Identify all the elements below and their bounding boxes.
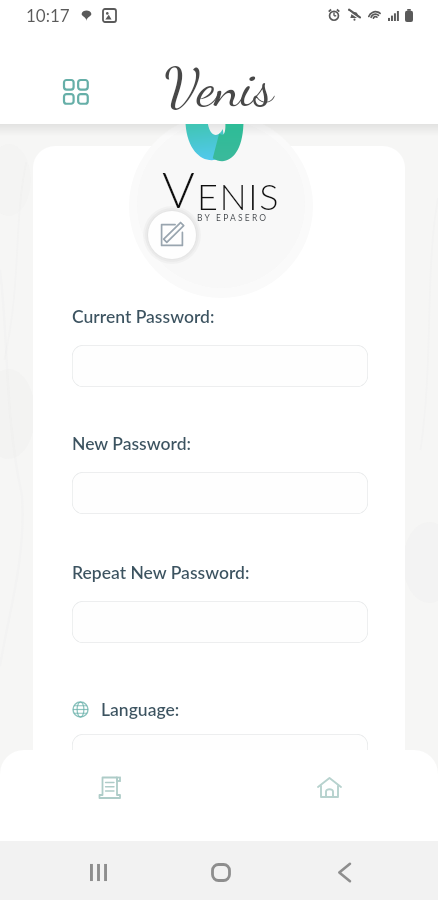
- button[interactable]: [72, 601, 368, 643]
- button[interactable]: Home: [191, 843, 251, 900]
- button[interactable]: Recents: [68, 843, 128, 900]
- staticText: Language:: [101, 699, 180, 720]
- staticText: Venis: [164, 54, 274, 120]
- staticText: ENIS: [197, 174, 281, 217]
- button[interactable]: Edit profile: [148, 211, 196, 259]
- staticText: BY EPASERO: [197, 213, 269, 223]
- button[interactable]: Back: [314, 843, 374, 900]
- staticText: Current Password:: [72, 306, 215, 327]
- button[interactable]: [72, 345, 368, 387]
- button[interactable]: Orders: [77, 755, 141, 819]
- staticText: New Password:: [72, 433, 191, 454]
- button[interactable]: Home: [297, 755, 361, 819]
- button[interactable]: Menu: [56, 72, 96, 112]
- staticText: 10:17: [26, 5, 70, 25]
- button[interactable]: [72, 472, 368, 514]
- staticText: V: [162, 159, 195, 219]
- staticText: Repeat New Password:: [72, 562, 250, 583]
